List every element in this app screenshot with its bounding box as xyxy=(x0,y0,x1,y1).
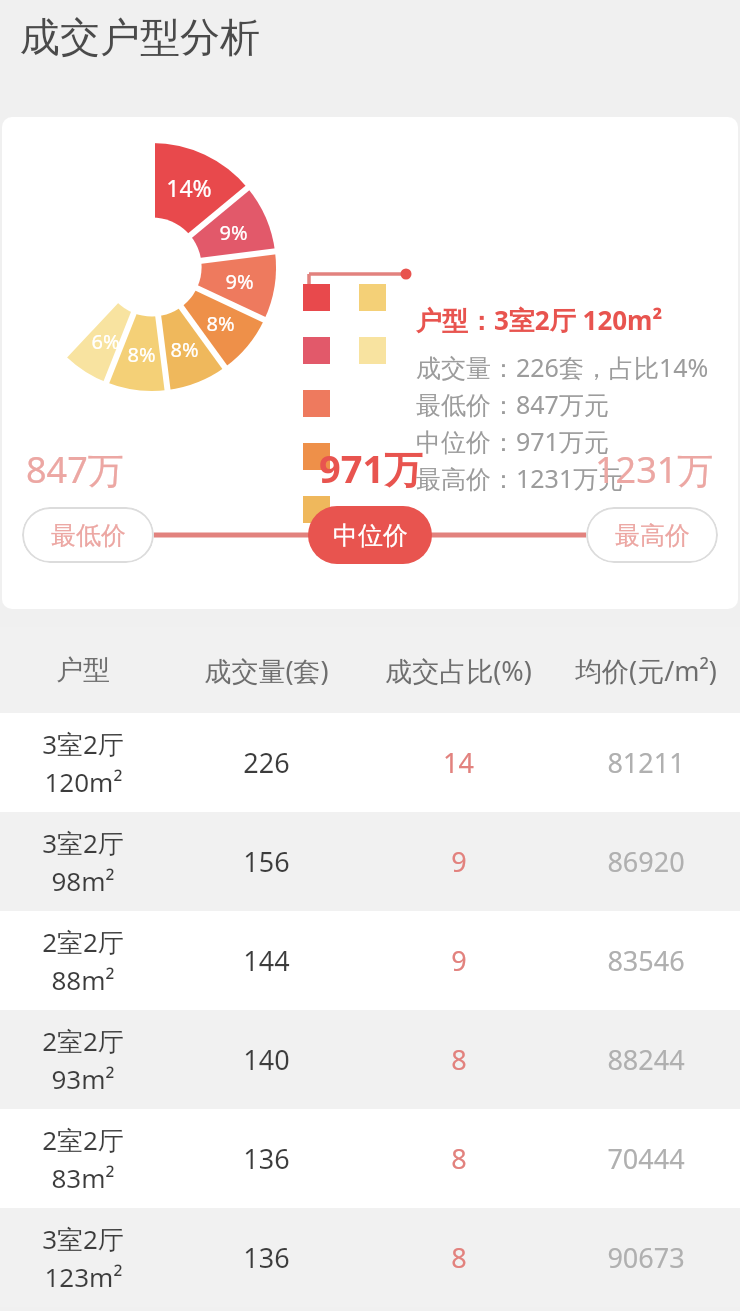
staticText: 9 xyxy=(451,942,467,979)
staticText: 成交量(套) xyxy=(204,652,329,689)
staticText: 86920 xyxy=(607,843,685,880)
staticText: 最低价：847万元 xyxy=(416,387,609,421)
staticText: 88244 xyxy=(607,1041,685,1078)
staticText: 9% xyxy=(225,268,254,295)
staticText: 847万 xyxy=(26,445,124,494)
staticText: 8% xyxy=(127,341,156,368)
staticText: 90673 xyxy=(607,1239,685,1276)
staticText: 1231万 xyxy=(595,445,714,494)
staticText: 81211 xyxy=(607,744,685,781)
button[interactable]: 2室2厅 xyxy=(0,911,740,1010)
staticText: 8 xyxy=(451,1041,467,1078)
staticText: 140 xyxy=(243,1041,290,1078)
staticText: 成交量：226套，占比14% xyxy=(416,350,709,384)
button[interactable]: 中位价 xyxy=(308,506,432,564)
staticText: 2室2厅 xyxy=(42,924,124,960)
staticText: 120m² xyxy=(44,764,123,799)
staticText: 8% xyxy=(170,336,199,363)
staticText: 9% xyxy=(219,219,248,246)
staticText: 971万 xyxy=(319,442,423,494)
staticText: 14 xyxy=(443,744,474,781)
staticText: 中位价：971万元 xyxy=(416,424,609,458)
button[interactable]: 最高价 xyxy=(586,507,718,563)
staticText: 3室2厅 xyxy=(42,1221,124,1257)
staticText: 3室2厅 xyxy=(42,726,124,762)
staticText: 123m² xyxy=(44,1259,123,1294)
staticText: 88m² xyxy=(51,962,115,997)
staticText: 156 xyxy=(243,843,290,880)
staticText: 最低价 xyxy=(51,520,126,551)
button[interactable]: 3室2厅 xyxy=(0,713,740,812)
button[interactable]: 户型成交占比环形图 xyxy=(28,143,276,391)
staticText: 户型：3室2厅 120m² xyxy=(416,302,663,338)
staticText: 2室2厅 xyxy=(42,1023,124,1059)
staticText: 最高价 xyxy=(615,520,690,551)
staticText: 98m² xyxy=(51,863,115,898)
button[interactable]: 3室2厅 xyxy=(0,1208,740,1307)
staticText: 14% xyxy=(166,172,212,202)
staticText: 8 xyxy=(451,1239,467,1276)
staticText: 6% xyxy=(91,328,120,355)
staticText: 户型 xyxy=(56,653,110,687)
button[interactable]: 2室2厅 xyxy=(0,1010,740,1109)
staticText: 成交占比(%) xyxy=(385,652,532,689)
staticText: 136 xyxy=(243,1140,290,1177)
button[interactable]: 2室2厅 xyxy=(0,1109,740,1208)
staticText: 9 xyxy=(451,843,467,880)
staticText: 83m² xyxy=(51,1160,115,1195)
staticText: 93m² xyxy=(51,1061,115,1096)
staticText: 最高价：1231万元 xyxy=(416,461,624,495)
button[interactable]: 3室2厅 xyxy=(0,812,740,911)
staticText: 8% xyxy=(206,310,235,337)
staticText: 成交户型分析 xyxy=(20,12,260,62)
button[interactable]: 最低价 xyxy=(22,507,154,563)
staticText: 3室2厅 xyxy=(42,825,124,861)
staticText: 144 xyxy=(243,942,290,979)
button[interactable]: 图例5 xyxy=(303,496,330,523)
staticText: 中位价 xyxy=(333,520,408,551)
button[interactable]: 图例4 xyxy=(303,443,330,470)
staticText: 136 xyxy=(243,1239,290,1276)
staticText: 226 xyxy=(243,744,290,781)
staticText: 均价(元/m²) xyxy=(575,652,717,689)
staticText: 70444 xyxy=(607,1140,685,1177)
staticText: 2室2厅 xyxy=(42,1122,124,1158)
staticText: 83546 xyxy=(607,942,685,979)
staticText: 8 xyxy=(451,1140,467,1177)
